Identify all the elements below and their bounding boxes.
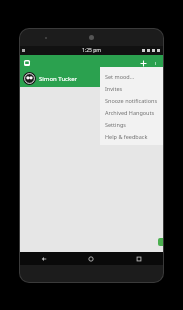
staticText: 1:25 pm xyxy=(82,47,101,54)
staticText: Help & feedback xyxy=(105,133,148,140)
button[interactable]: Recents xyxy=(115,252,163,265)
button[interactable]: New conversation xyxy=(158,238,163,246)
staticText: Snooze notifications xyxy=(105,97,158,104)
staticText: Set mood... xyxy=(105,73,135,80)
button[interactable]: Archived Hangouts xyxy=(100,106,163,118)
button[interactable]: Hangouts xyxy=(23,59,31,67)
button[interactable]: Home xyxy=(67,252,115,265)
button[interactable]: Snooze notifications xyxy=(100,94,163,106)
staticText: Invites xyxy=(105,85,123,92)
button[interactable]: More options xyxy=(149,57,161,69)
button[interactable]: Back xyxy=(20,252,67,265)
button[interactable]: Invites xyxy=(100,82,163,94)
button[interactable]: Add xyxy=(137,57,149,69)
staticText: Simon Tucker xyxy=(39,75,78,83)
staticText: Archived Hangouts xyxy=(105,109,155,116)
button[interactable]: Help & feedback xyxy=(100,130,163,142)
staticText: Settings xyxy=(105,121,126,128)
button[interactable]: Settings xyxy=(100,118,163,130)
button[interactable]: Set mood... xyxy=(100,70,163,82)
button[interactable]: Simon Tucker xyxy=(20,70,163,87)
